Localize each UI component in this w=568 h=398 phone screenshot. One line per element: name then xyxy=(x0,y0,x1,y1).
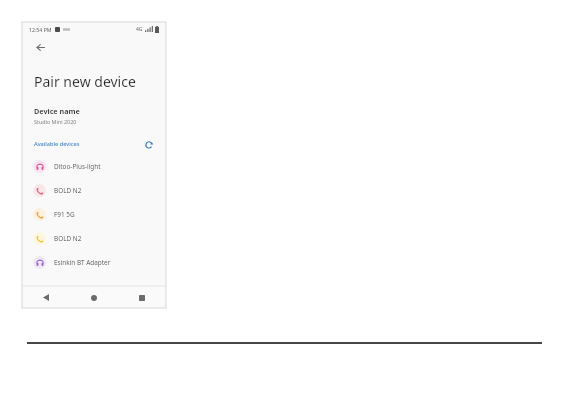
button[interactable]: Back xyxy=(22,287,70,308)
staticText: Available devices xyxy=(34,140,80,148)
button[interactable]: Recent apps xyxy=(118,287,166,308)
staticText: F91 5G xyxy=(54,210,75,219)
button[interactable]: F91 5G xyxy=(22,202,166,226)
staticText: 4G xyxy=(136,26,143,33)
staticText: Device name xyxy=(34,106,80,116)
button[interactable]: Esinkin BT Adapter xyxy=(22,250,166,274)
staticText: Esinkin BT Adapter xyxy=(54,258,111,267)
staticText: 12:54 PM xyxy=(29,26,52,33)
staticText: BOLD N2 xyxy=(54,234,82,243)
staticText: Ditoo-Plus-light xyxy=(54,162,101,171)
button[interactable]: Ditoo-Plus-light xyxy=(22,154,166,178)
button[interactable]: BOLD N2 xyxy=(22,226,166,250)
button[interactable]: BOLD N2 xyxy=(22,178,166,202)
button[interactable]: Home xyxy=(70,287,118,308)
button[interactable]: Refresh xyxy=(142,138,155,151)
staticText: BOLD N2 xyxy=(54,186,82,195)
staticText: Pair new device xyxy=(34,72,136,91)
button[interactable]: Back xyxy=(32,39,48,55)
staticText: Studio Mini 2020 xyxy=(34,118,77,125)
